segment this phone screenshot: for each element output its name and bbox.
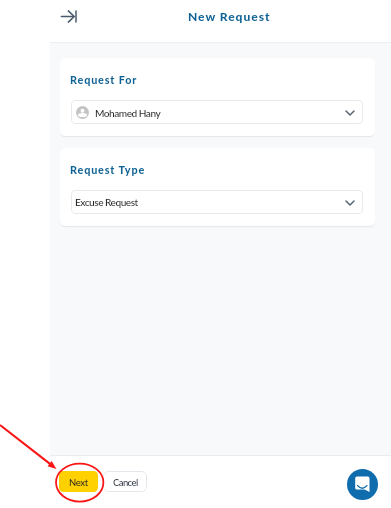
button[interactable]: Open chat (347, 469, 378, 500)
staticText: Mohamed Hany (95, 107, 161, 119)
staticText: Next (69, 477, 88, 488)
button[interactable]: Cancel (103, 471, 147, 492)
button[interactable]: Excuse Request (71, 190, 363, 214)
staticText: New Request (188, 9, 271, 24)
staticText: Request Type (70, 163, 146, 176)
staticText: Request For (70, 73, 138, 86)
button[interactable]: Next (59, 471, 98, 492)
button[interactable]: Mohamed Hany (71, 100, 363, 124)
staticText: Cancel (113, 477, 138, 488)
staticText: Excuse Request (75, 196, 138, 208)
button[interactable]: Collapse navigation (55, 2, 85, 32)
